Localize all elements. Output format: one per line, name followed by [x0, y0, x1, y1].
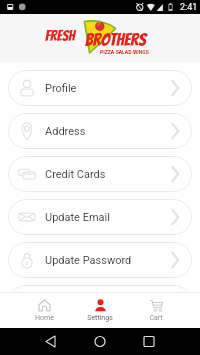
staticText: Settings	[87, 314, 113, 322]
staticText: 2:41	[180, 2, 198, 13]
button[interactable]: Settings	[72, 292, 128, 328]
staticText: Home	[35, 314, 54, 322]
staticText: PIZZA·SALAD·WINGS	[100, 49, 149, 55]
staticText: Credit Cards	[45, 168, 106, 181]
button[interactable]: Credit Cards	[8, 156, 192, 192]
button[interactable]: Home	[16, 292, 72, 328]
button[interactable]: Update Email	[8, 199, 192, 235]
staticText: Update Email	[45, 211, 110, 224]
staticText: Profile	[45, 82, 77, 95]
other: System navigation	[0, 328, 200, 355]
staticText: Brothers	[85, 30, 146, 49]
button[interactable]: Profile	[8, 70, 192, 106]
button[interactable]: Cart	[128, 292, 184, 328]
staticText: Update Password	[45, 254, 132, 267]
button[interactable]: Logout	[8, 285, 192, 292]
staticText: Address	[45, 125, 86, 138]
button[interactable]: Address	[8, 113, 192, 149]
button[interactable]: Update Password	[8, 242, 192, 278]
staticText: Cart	[149, 314, 163, 322]
staticText: Fresh	[45, 28, 75, 44]
